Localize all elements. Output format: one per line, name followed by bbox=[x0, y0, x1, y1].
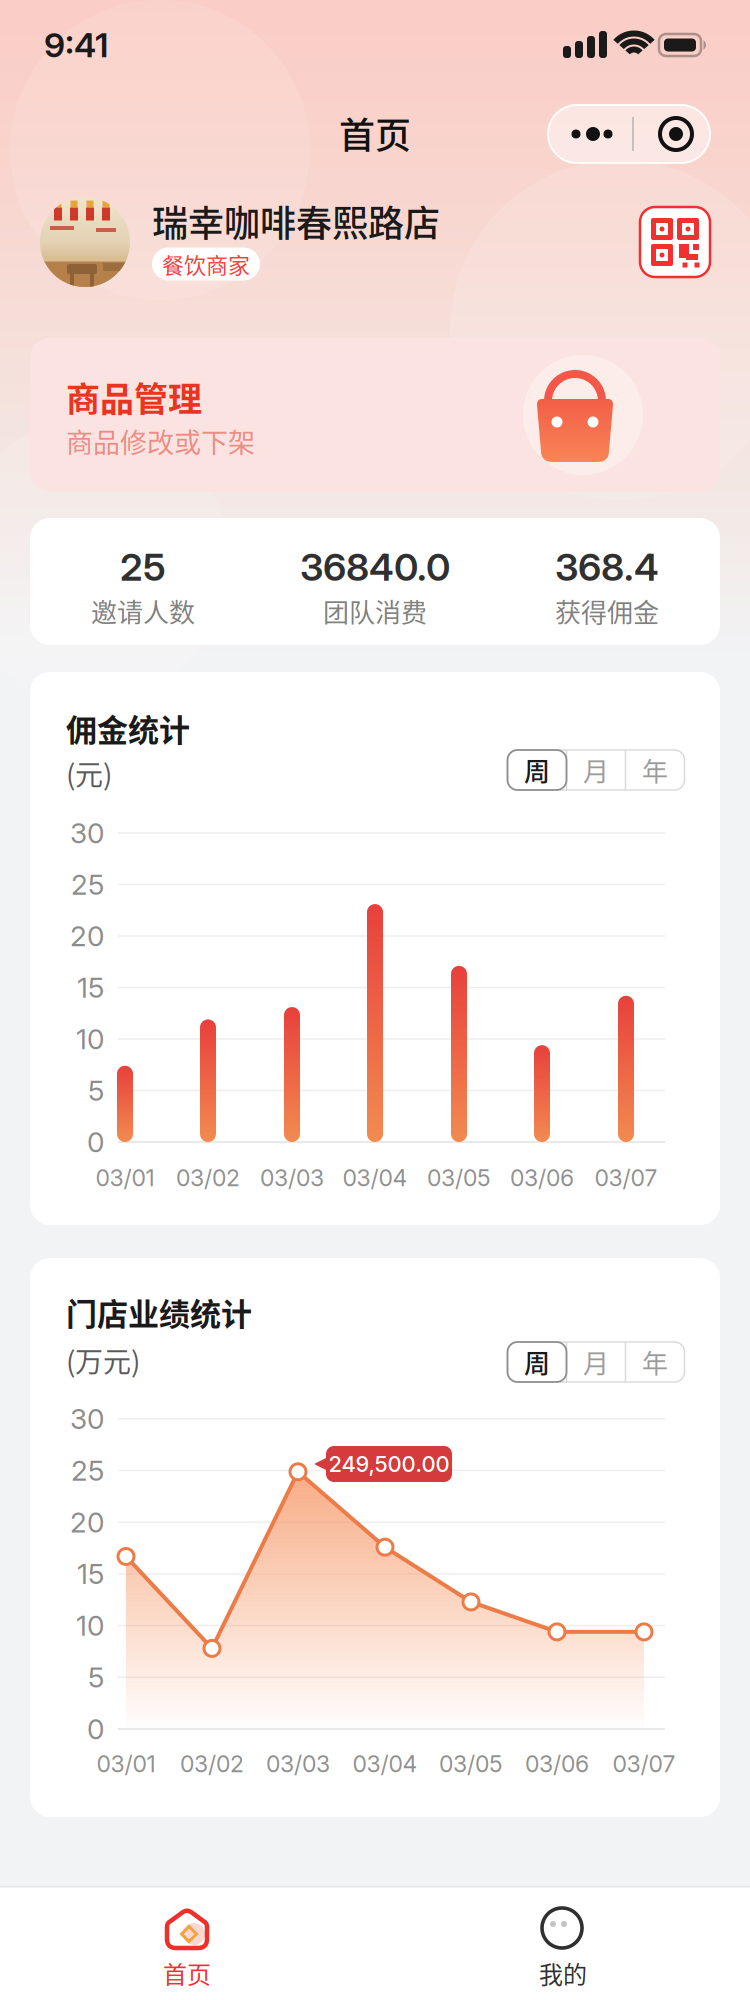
button[interactable]: 首页 bbox=[37, 1886, 337, 2000]
staticText: 20 bbox=[70, 919, 104, 953]
button[interactable]: 我的 bbox=[413, 1886, 713, 2000]
staticText: 03/05 bbox=[427, 1164, 491, 1192]
staticText: (元) bbox=[66, 753, 112, 793]
staticText: 周 bbox=[524, 751, 550, 789]
staticText: 03/01 bbox=[96, 1750, 155, 1778]
button[interactable]: 餐饮商家 bbox=[152, 247, 260, 280]
staticText: 15 bbox=[77, 971, 104, 1004]
staticText: 9:41 bbox=[44, 24, 108, 65]
staticText: 25 bbox=[120, 544, 166, 590]
staticText: 03/05 bbox=[439, 1750, 503, 1778]
staticText: 0 bbox=[87, 1712, 104, 1746]
staticText: 03/07 bbox=[594, 1164, 657, 1192]
button[interactable]: 月 bbox=[566, 750, 625, 790]
staticText: 20 bbox=[70, 1505, 104, 1539]
staticText: 30 bbox=[70, 1402, 104, 1436]
staticText: 佣金统计 bbox=[66, 706, 190, 750]
staticText: 首页 bbox=[339, 107, 411, 159]
staticText: 邀请人数 bbox=[91, 592, 195, 630]
button[interactable]: 249,500.00 bbox=[312, 1452, 452, 1492]
staticText: 月 bbox=[583, 751, 609, 789]
staticText: 36840.0 bbox=[300, 544, 450, 590]
staticText: 年 bbox=[642, 1343, 668, 1381]
button[interactable]: 年 bbox=[625, 750, 684, 790]
button[interactable]: 周 bbox=[507, 750, 566, 790]
staticText: 商品管理 bbox=[66, 372, 202, 422]
staticText: 5 bbox=[88, 1660, 104, 1694]
staticText: 03/06 bbox=[525, 1750, 589, 1778]
staticText: 03/06 bbox=[510, 1164, 574, 1192]
staticText: 10 bbox=[76, 1609, 104, 1643]
staticText: 25 bbox=[71, 1454, 104, 1487]
staticText: 商品修改或下架 bbox=[66, 421, 255, 461]
button[interactable]: 商品管理 bbox=[30, 338, 720, 492]
staticText: 03/02 bbox=[176, 1164, 240, 1192]
button[interactable]: 月 bbox=[566, 1342, 625, 1382]
staticText: 月 bbox=[583, 1343, 609, 1381]
staticText: 03/03 bbox=[260, 1164, 324, 1192]
staticText: 249,500.00 bbox=[328, 1451, 449, 1477]
staticText: 03/02 bbox=[180, 1750, 244, 1778]
staticText: 团队消费 bbox=[323, 592, 427, 630]
staticText: 368.4 bbox=[555, 544, 659, 590]
staticText: 30 bbox=[70, 816, 104, 850]
staticText: 03/04 bbox=[342, 1164, 407, 1192]
staticText: 首页 bbox=[163, 1956, 211, 1990]
staticText: 03/03 bbox=[266, 1750, 330, 1778]
staticText: 03/07 bbox=[612, 1750, 675, 1778]
staticText: 获得佣金 bbox=[555, 592, 659, 630]
button[interactable] bbox=[548, 105, 710, 163]
staticText: 0 bbox=[87, 1125, 104, 1159]
button[interactable] bbox=[640, 207, 710, 277]
staticText: (万元) bbox=[66, 1340, 140, 1380]
staticText: 25 bbox=[71, 868, 104, 901]
staticText: 餐饮商家 bbox=[162, 248, 250, 280]
staticText: 门店业绩统计 bbox=[66, 1290, 252, 1334]
button[interactable]: 周 bbox=[507, 1342, 566, 1382]
staticText: 15 bbox=[77, 1557, 104, 1591]
staticText: 我的 bbox=[539, 1956, 587, 1990]
staticText: 03/01 bbox=[95, 1164, 154, 1192]
staticText: 瑞幸咖啡春熙路店 bbox=[152, 195, 440, 247]
staticText: 年 bbox=[642, 751, 668, 789]
button[interactable]: 年 bbox=[625, 1342, 684, 1382]
staticText: 10 bbox=[76, 1022, 104, 1056]
staticText: 5 bbox=[88, 1074, 104, 1107]
staticText: 03/04 bbox=[352, 1750, 417, 1778]
staticText: 周 bbox=[524, 1343, 550, 1381]
